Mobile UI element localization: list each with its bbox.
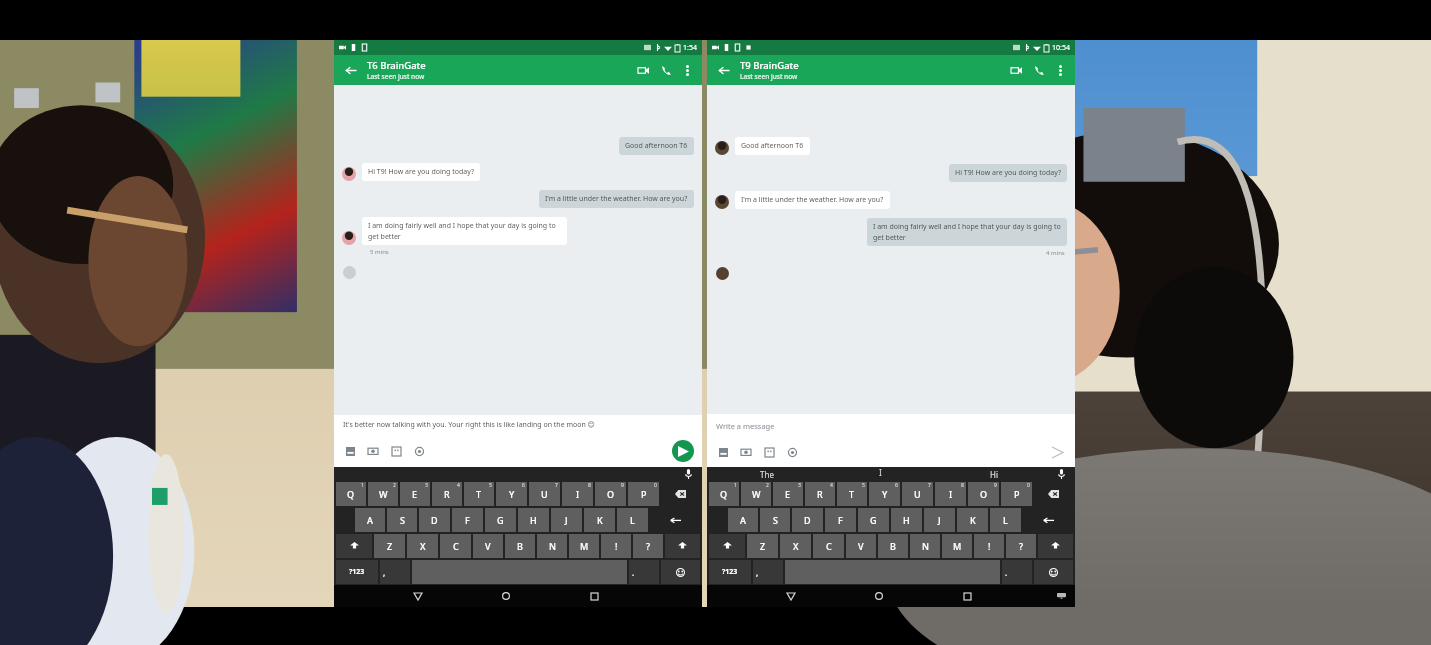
button[interactable]: O (595, 482, 626, 506)
button[interactable]: I am doing fairly well and I hope that y… (715, 218, 1067, 246)
button[interactable]: Call (1029, 60, 1049, 80)
button[interactable]: S (387, 508, 417, 532)
button[interactable]: . (629, 560, 659, 584)
button[interactable]: ?123 (709, 560, 751, 584)
button[interactable]: V (846, 534, 876, 558)
button[interactable]: Voice input (1050, 467, 1072, 481)
button[interactable]: Backspace (661, 482, 700, 506)
button[interactable]: C (440, 534, 471, 558)
button[interactable]: Back (408, 586, 428, 606)
button[interactable]: Back (781, 586, 801, 606)
button[interactable]: More options (1051, 61, 1069, 79)
button[interactable]: I (935, 482, 966, 506)
button[interactable]: M (569, 534, 599, 558)
button[interactable]: H (518, 508, 549, 532)
button[interactable]: Hi T9! How are you doing today? (342, 163, 694, 181)
button[interactable]: I'm a little under the weather. How are … (715, 191, 1067, 209)
button[interactable]: ! (601, 534, 631, 558)
button[interactable]: P (1001, 482, 1032, 506)
button[interactable]: Camera (738, 444, 754, 460)
button[interactable]: F (825, 508, 856, 532)
button[interactable]: Location (784, 444, 800, 460)
button[interactable]: Camera (365, 443, 381, 459)
button[interactable]: T (464, 482, 494, 506)
button[interactable]: E (773, 482, 803, 506)
button[interactable]: . (1002, 560, 1032, 584)
button[interactable]: Hi T9! How are you doing today? (715, 164, 1067, 182)
button[interactable]: Z (374, 534, 405, 558)
button[interactable]: T (837, 482, 867, 506)
button[interactable]: B (505, 534, 535, 558)
button[interactable]: Recents (957, 586, 977, 606)
button[interactable]: D (792, 508, 823, 532)
button[interactable]: I'm a little under the weather. How are … (342, 190, 694, 208)
button[interactable]: R (805, 482, 835, 506)
button[interactable]: The (710, 467, 824, 481)
button[interactable]: N (910, 534, 940, 558)
button[interactable]: Video call (633, 60, 653, 80)
button[interactable]: Sticker (761, 444, 777, 460)
button[interactable]: Shift (336, 534, 372, 558)
button[interactable]: Shift (665, 534, 700, 558)
button[interactable]: T6 BrainGate (367, 59, 633, 81)
button[interactable]: G (858, 508, 889, 532)
button[interactable]: Hide keyboard (1051, 586, 1071, 606)
button[interactable]: L (990, 508, 1021, 532)
button[interactable]: W (368, 482, 398, 506)
button[interactable]: Good afternoon T6 (342, 137, 694, 155)
button[interactable]: Home (869, 586, 889, 606)
button[interactable]: Call (656, 60, 676, 80)
button[interactable]: , (380, 560, 410, 584)
button[interactable]: K (957, 508, 988, 532)
button[interactable]: Good afternoon T6 (715, 137, 1067, 155)
button[interactable]: Back (713, 60, 733, 80)
button[interactable]: Q (336, 482, 366, 506)
button[interactable]: Enter (650, 508, 700, 532)
button[interactable]: J (551, 508, 582, 532)
button[interactable]: U (529, 482, 560, 506)
button[interactable]: S (760, 508, 790, 532)
button[interactable]: Video call (1006, 60, 1026, 80)
button[interactable]: C (813, 534, 844, 558)
button[interactable]: E (400, 482, 430, 506)
button[interactable]: Shift (709, 534, 745, 558)
button[interactable]: Home (496, 586, 516, 606)
button[interactable]: W (741, 482, 771, 506)
button[interactable]: Location (411, 443, 427, 459)
button[interactable]: T9 BrainGate (740, 59, 1006, 81)
button[interactable]: X (407, 534, 438, 558)
button[interactable]: D (419, 508, 450, 532)
button[interactable]: M (942, 534, 972, 558)
button[interactable]: Send (672, 440, 694, 462)
button[interactable]: K (584, 508, 615, 532)
button[interactable]: Y (496, 482, 527, 506)
button[interactable]: R (432, 482, 462, 506)
button[interactable]: Z (747, 534, 778, 558)
button[interactable]: Emoji (1034, 560, 1073, 584)
button[interactable]: More options (678, 61, 696, 79)
button[interactable]: L (617, 508, 648, 532)
button[interactable]: Y (869, 482, 900, 506)
button[interactable]: Send (1047, 442, 1067, 462)
button[interactable]: Gallery (715, 444, 731, 460)
button[interactable]: F (452, 508, 483, 532)
button[interactable]: Backspace (1034, 482, 1073, 506)
button[interactable]: G (485, 508, 516, 532)
button[interactable]: I (562, 482, 593, 506)
button[interactable]: B (878, 534, 908, 558)
button[interactable]: Gallery (342, 443, 358, 459)
button[interactable]: Sticker (388, 443, 404, 459)
button[interactable]: Back (340, 60, 360, 80)
button[interactable]: ? (633, 534, 663, 558)
button[interactable]: P (628, 482, 659, 506)
button[interactable]: O (968, 482, 999, 506)
button[interactable]: ?123 (336, 560, 378, 584)
button[interactable]: ? (1006, 534, 1036, 558)
button[interactable]: Q (709, 482, 739, 506)
button[interactable]: U (902, 482, 933, 506)
button[interactable]: ! (974, 534, 1004, 558)
button[interactable]: N (537, 534, 567, 558)
button[interactable]: H (891, 508, 922, 532)
